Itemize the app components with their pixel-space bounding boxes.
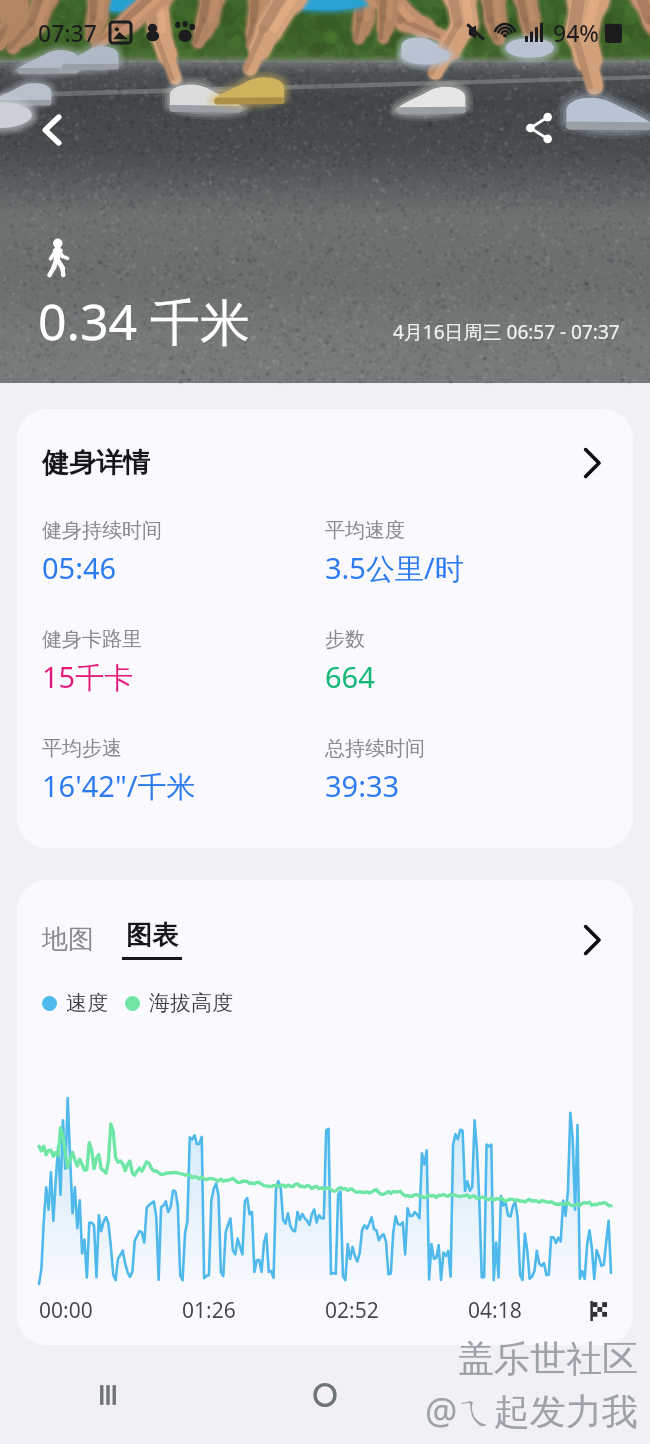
staticText: 地图 (42, 923, 94, 956)
staticText: 速度 (66, 990, 108, 1016)
button[interactable]: Recent apps (0, 1345, 216, 1444)
staticText: 健身详情 (42, 446, 150, 480)
staticText: 总持续时间 (325, 736, 425, 761)
staticText: 00:00 (39, 1296, 93, 1325)
staticText: 图表 (126, 919, 178, 952)
staticText: 海拔高度 (149, 990, 233, 1016)
staticText: @ㄟ起发力我 (425, 1386, 638, 1435)
staticText: 05:46 (42, 548, 117, 587)
button[interactable]: Home (216, 1345, 433, 1444)
button[interactable]: 图表 (122, 919, 182, 960)
staticText: 4月16日周三 06:57 - 07:37 (393, 319, 620, 345)
staticText: 0.34 千米 (38, 287, 251, 355)
staticText: 01:26 (182, 1296, 236, 1325)
staticText: 02:52 (325, 1296, 379, 1325)
staticText: 步数 (325, 627, 365, 652)
staticText: 94% (553, 17, 599, 48)
staticText: 3.5公里/时 (325, 548, 464, 588)
staticText: 39:33 (325, 766, 400, 805)
staticText: 平均速度 (325, 518, 405, 543)
staticText: 664 (325, 657, 375, 696)
staticText: 健身持续时间 (42, 518, 162, 543)
button[interactable]: Share (512, 100, 568, 156)
staticText: 盖乐世社区 (458, 1336, 638, 1381)
staticText: 07:37 (38, 17, 97, 48)
button[interactable]: Back (433, 1345, 650, 1444)
staticText: 16'42"/千米 (42, 766, 196, 806)
button[interactable]: Back (24, 102, 80, 158)
staticText: 15千卡 (42, 657, 134, 697)
staticText: 健身卡路里 (42, 627, 142, 652)
button[interactable]: 地图 (42, 923, 94, 956)
staticText: 平均步速 (42, 736, 122, 761)
staticText: 04:18 (468, 1296, 522, 1325)
button[interactable]: 健身详情 (17, 409, 633, 848)
